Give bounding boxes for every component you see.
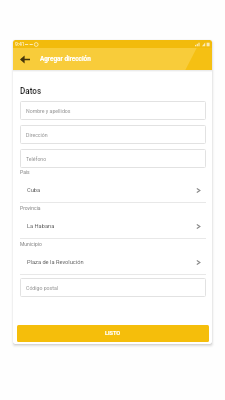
button[interactable]: Dirección [20,125,206,144]
staticText: País [20,169,30,175]
staticText: Dirección [26,132,48,138]
button[interactable]: Back [15,48,35,70]
button[interactable]: Teléfono [20,149,206,168]
staticText: Cuba [27,187,199,194]
staticText: LISTO [105,330,121,337]
staticText: Datos [20,86,42,96]
staticText: 9:41 [15,41,25,47]
staticText: Teléfono [26,156,47,162]
button[interactable]: LISTO [17,325,209,342]
button[interactable]: Municipio [20,239,206,275]
staticText: Municipio [20,241,42,247]
staticText: Plaza de la Revolución [27,259,199,266]
staticText: Código postal [26,285,59,291]
button[interactable]: Provincia [20,203,206,239]
staticText: Agregar dirección [40,55,91,63]
staticText: Provincia [20,205,41,211]
button[interactable]: Código postal [20,278,206,297]
staticText: Nombre y apellidos [26,108,71,114]
button[interactable]: Nombre y apellidos [20,101,206,120]
staticText: La Habana [27,223,199,230]
button[interactable]: País [20,167,206,203]
